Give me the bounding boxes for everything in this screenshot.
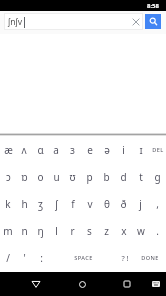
staticText: u: [53, 170, 60, 184]
staticText: x: [121, 224, 127, 238]
staticText: b: [103, 170, 110, 184]
staticText: g: [154, 170, 161, 184]
button[interactable]: Search: [145, 14, 161, 29]
staticText: ŋ: [37, 224, 44, 238]
staticText: ɒ: [21, 170, 28, 184]
staticText: SPACE: [74, 254, 93, 262]
staticText: o: [37, 170, 44, 184]
staticText: ,: [156, 197, 159, 211]
button[interactable]: SPACE: [50, 244, 116, 271]
staticText: ʃnʃv: [8, 16, 23, 28]
button[interactable]: m: [0, 217, 16, 244]
staticText: ə: [104, 143, 110, 157]
button[interactable]: Switch keyboard: [144, 272, 166, 296]
button[interactable]: :: [33, 244, 50, 271]
button[interactable]: n: [16, 217, 32, 244]
button[interactable]: k: [0, 190, 16, 217]
staticText: .: [156, 224, 159, 238]
button[interactable]: e: [81, 136, 98, 163]
staticText: DONE: [141, 254, 159, 262]
button[interactable]: Home: [70, 272, 94, 296]
button[interactable]: a: [48, 136, 64, 163]
button[interactable]: ŋ: [32, 217, 48, 244]
button[interactable]: ð: [115, 190, 132, 217]
button[interactable]: æ: [0, 136, 16, 163]
button[interactable]: p: [81, 163, 98, 190]
staticText: ɔ: [6, 170, 11, 184]
staticText: ʒ: [38, 197, 43, 211]
button[interactable]: ɔ: [0, 163, 16, 190]
staticText: ʃ: [55, 197, 58, 211]
staticText: ʊ: [69, 170, 76, 184]
staticText: v: [87, 197, 93, 211]
staticText: ð: [120, 197, 127, 211]
staticText: m: [3, 224, 13, 238]
button[interactable]: θ: [98, 190, 115, 217]
staticText: ? !: [121, 253, 129, 263]
staticText: h: [21, 197, 28, 211]
button[interactable]: d: [115, 163, 132, 190]
staticText: z: [104, 224, 109, 238]
button[interactable]: ʌ: [16, 136, 32, 163]
button[interactable]: ə: [98, 136, 115, 163]
staticText: θ: [104, 197, 110, 211]
staticText: l: [55, 224, 58, 238]
button[interactable]: DEL: [149, 136, 166, 163]
staticText: r: [70, 224, 75, 238]
staticText: ': [23, 251, 26, 265]
staticText: f: [71, 197, 75, 211]
staticText: ɪ: [139, 143, 143, 157]
button[interactable]: z: [98, 217, 115, 244]
staticText: e: [87, 143, 93, 157]
button[interactable]: .: [149, 217, 166, 244]
button[interactable]: w: [132, 217, 149, 244]
button[interactable]: l: [48, 217, 64, 244]
staticText: æ: [4, 143, 13, 157]
staticText: k: [5, 197, 11, 211]
button[interactable]: Back: [24, 272, 48, 296]
staticText: p: [86, 170, 93, 184]
staticText: d: [120, 170, 127, 184]
button[interactable]: ɪ: [132, 136, 149, 163]
button[interactable]: DONE: [133, 244, 166, 271]
button[interactable]: ': [16, 244, 33, 271]
staticText: s: [87, 224, 92, 238]
button[interactable]: v: [81, 190, 98, 217]
button[interactable]: x: [115, 217, 132, 244]
button[interactable]: b: [98, 163, 115, 190]
button[interactable]: ʃ: [48, 190, 64, 217]
button[interactable]: ,: [149, 190, 166, 217]
button[interactable]: ? !: [116, 244, 133, 271]
button[interactable]: g: [149, 163, 166, 190]
button[interactable]: o: [32, 163, 48, 190]
staticText: :: [40, 251, 43, 265]
staticText: w: [137, 224, 145, 238]
button[interactable]: u: [48, 163, 64, 190]
staticText: j: [139, 197, 142, 211]
button[interactable]: Recent apps: [115, 272, 139, 296]
button[interactable]: ɒ: [16, 163, 32, 190]
button[interactable]: Clear: [127, 13, 144, 30]
staticText: n: [21, 224, 28, 238]
button[interactable]: t: [132, 163, 149, 190]
button[interactable]: ɑ: [32, 136, 48, 163]
staticText: 8:58: [147, 2, 159, 10]
staticText: ʌ: [21, 143, 27, 157]
staticText: t: [139, 170, 143, 184]
staticText: /: [6, 251, 10, 265]
staticText: ɜ: [70, 143, 75, 157]
staticText: DEL: [152, 146, 164, 154]
button[interactable]: i: [115, 136, 132, 163]
button[interactable]: ʒ: [32, 190, 48, 217]
button[interactable]: ʃnʃv: [4, 13, 143, 30]
button[interactable]: r: [64, 217, 81, 244]
button[interactable]: f: [64, 190, 81, 217]
button[interactable]: h: [16, 190, 32, 217]
button[interactable]: /: [0, 244, 16, 271]
button[interactable]: ɜ: [64, 136, 81, 163]
button[interactable]: ʊ: [64, 163, 81, 190]
staticText: ɑ: [37, 143, 44, 157]
staticText: i: [122, 143, 125, 157]
button[interactable]: s: [81, 217, 98, 244]
button[interactable]: j: [132, 190, 149, 217]
